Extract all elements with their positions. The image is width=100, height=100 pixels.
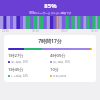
staticText: 浅い睡眠 56% (53, 60, 70, 64)
button[interactable]: 1時45分 (8, 67, 50, 78)
staticText: 深い睡眠 20% (11, 60, 28, 64)
button[interactable]: 10分 (50, 67, 92, 77)
staticText: 00:58 (32, 29, 39, 33)
staticText: 85%のユーザーよりもよい睡眠です (29, 11, 72, 15)
staticText: 7時間17分 (8, 38, 92, 45)
staticText: 4時05分 (50, 53, 66, 59)
button[interactable]: 1時27分 (8, 53, 50, 64)
staticText: 1時45分 (8, 67, 24, 73)
staticText: 85% (44, 2, 57, 10)
staticText: 06:56 (91, 29, 98, 33)
staticText: 1時27分 (8, 53, 24, 59)
button[interactable]: 7時間17分 (4, 35, 96, 82)
staticText: 23:26 (2, 29, 9, 33)
staticText: 10分 (50, 67, 59, 73)
staticText: レム睡眠 24% (11, 74, 28, 78)
button[interactable]: 4時05分 (50, 53, 92, 64)
button[interactable]: 睡眠グラフ (0, 16, 100, 29)
staticText: 目覚め時間 (53, 74, 67, 77)
staticText: 03:07 (61, 29, 68, 33)
